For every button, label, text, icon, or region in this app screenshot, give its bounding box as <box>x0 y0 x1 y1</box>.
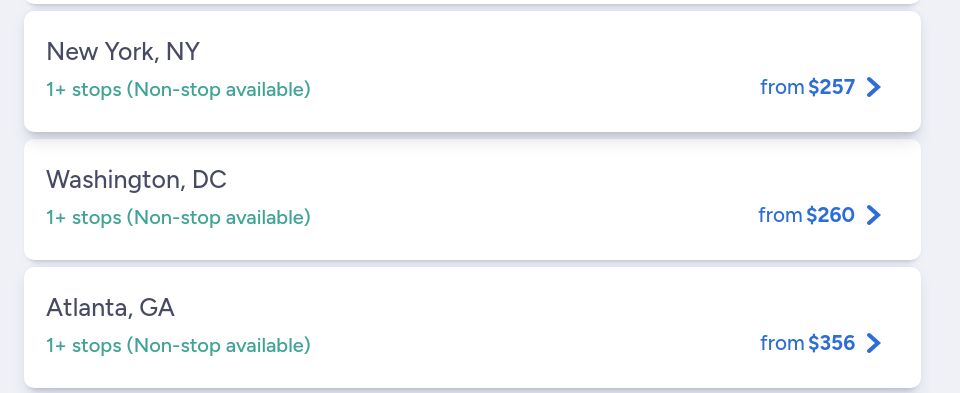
staticText: Washington, DC <box>46 164 228 194</box>
other: See flight deals to Atlanta, GA <box>867 333 880 353</box>
staticText: 1+ stops (Non-stop available) <box>46 205 311 229</box>
other: See flight deals to New York, NY <box>867 77 880 97</box>
staticText: 1+ stops (Non-stop available) <box>46 333 311 357</box>
button[interactable]: from <box>749 319 891 366</box>
button[interactable]: Washington, DC <box>24 139 921 260</box>
staticText: from <box>758 202 803 227</box>
staticText: from <box>760 330 805 355</box>
staticText: New York, NY <box>46 36 201 66</box>
staticText: from <box>760 74 805 99</box>
button[interactable]: from <box>749 63 891 110</box>
staticText: $260 <box>806 202 856 227</box>
button[interactable]: from <box>747 191 891 238</box>
staticText: $257 <box>808 74 856 99</box>
staticText: $356 <box>808 330 856 355</box>
staticText: Atlanta, GA <box>46 292 175 322</box>
button[interactable]: Atlanta, GA <box>24 267 921 388</box>
staticText: 1+ stops (Non-stop available) <box>46 77 311 101</box>
other: See flight deals to Washington, DC <box>867 205 880 225</box>
button[interactable]: New York, NY <box>24 11 921 132</box>
